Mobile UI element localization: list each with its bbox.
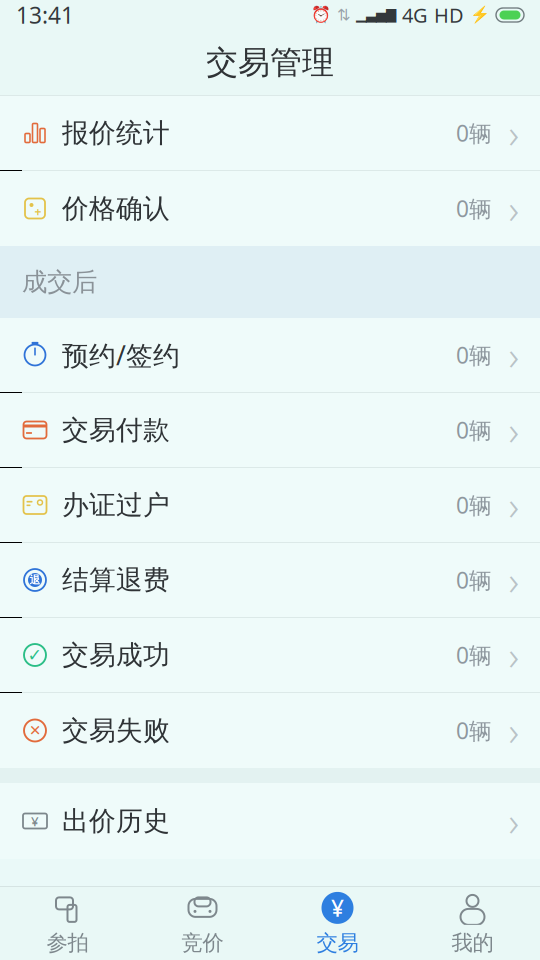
staticText: + [34, 203, 41, 219]
staticText: › [508, 628, 519, 681]
staticText: 交易付款 [62, 414, 170, 446]
staticText: ¥ [331, 893, 344, 923]
staticText: ⇅ [337, 6, 350, 24]
staticText: ⚡ [470, 6, 490, 24]
staticText: ✕ [29, 722, 41, 739]
staticText: ¥ [31, 812, 39, 830]
staticText: 竞价 [181, 930, 223, 956]
staticText: › [508, 478, 519, 531]
staticText: › [508, 328, 519, 381]
staticText: 我的 [451, 930, 493, 956]
button[interactable]: 办证过户 [0, 468, 540, 543]
staticText: 0辆 [456, 640, 492, 670]
staticText: 13:41 [16, 0, 74, 30]
staticText: 交易管理 [206, 43, 334, 82]
button[interactable]: ¥ [270, 887, 405, 960]
staticText: ▁▃▅▇ [356, 7, 396, 22]
staticText: 退 [29, 573, 40, 586]
staticText: 0辆 [456, 118, 492, 148]
button[interactable]: 我的 [405, 887, 540, 960]
button[interactable]: ✕ [0, 693, 540, 768]
staticText: 出价历史 [62, 805, 170, 837]
staticText: 0辆 [456, 490, 492, 520]
staticText: 0辆 [456, 565, 492, 595]
staticText: ⏰ [311, 6, 331, 24]
staticText: › [508, 794, 519, 847]
staticText: › [508, 182, 519, 235]
staticText: 0辆 [456, 193, 492, 223]
staticText: 交易失败 [62, 714, 170, 747]
staticText: › [508, 403, 519, 456]
button[interactable]: 报价统计 [0, 96, 540, 171]
staticText: 办证过户 [62, 489, 170, 521]
staticText: 结算退费 [62, 564, 170, 596]
staticText: 4G [402, 2, 428, 28]
staticText: 预约/签约 [62, 337, 180, 373]
button[interactable]: 参拍 [0, 887, 135, 960]
staticText: 0辆 [456, 715, 492, 745]
staticText: › [508, 553, 519, 606]
button[interactable]: ¥ [0, 783, 540, 859]
staticText: 成交后 [22, 266, 97, 297]
button[interactable]: 交易付款 [0, 393, 540, 468]
staticText: 0辆 [456, 415, 492, 445]
staticText: HD [434, 2, 464, 28]
button[interactable]: + [0, 171, 540, 246]
staticText: › [508, 704, 519, 757]
staticText: 0辆 [456, 340, 492, 370]
button[interactable]: 竞价 [135, 887, 270, 960]
button[interactable]: 预约/签约 [0, 318, 540, 393]
staticText: 交易成功 [62, 639, 170, 671]
staticText: 报价统计 [62, 117, 170, 149]
staticText: 价格确认 [62, 192, 170, 225]
staticText: › [508, 106, 519, 159]
staticText: ✓ [27, 645, 42, 665]
button[interactable]: 退 [0, 543, 540, 618]
button[interactable]: ✓ [0, 618, 540, 693]
staticText: 交易 [316, 930, 358, 956]
staticText: 参拍 [46, 930, 88, 956]
